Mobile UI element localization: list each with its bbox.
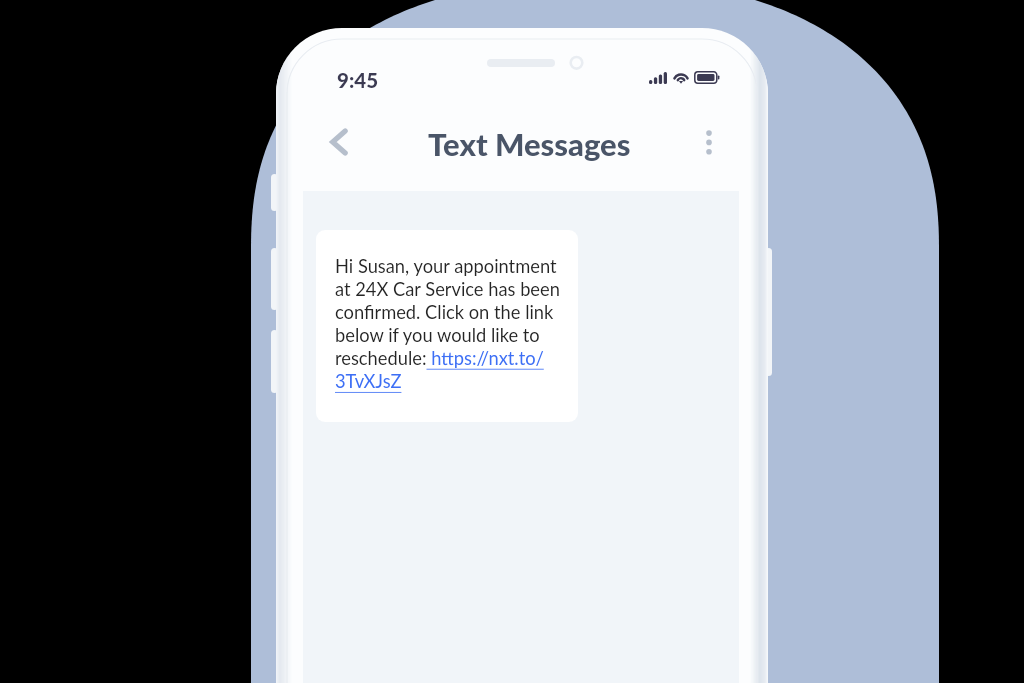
staticText: Text Messages [428,125,631,162]
button[interactable]: Hi Susan, your appointment at 24X Car Se… [316,230,578,422]
button[interactable]: More options [688,121,730,163]
staticText: 9:45 [337,68,379,93]
button[interactable]: Back [318,121,360,163]
staticText: Hi Susan, your appointment at 24X Car Se… [335,255,567,392]
